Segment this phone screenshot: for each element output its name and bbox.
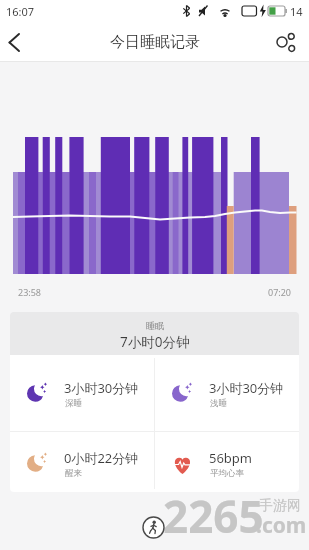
staticText: 3小时30分钟: [209, 379, 284, 397]
button[interactable]: [142, 516, 165, 539]
staticText: 浅睡: [210, 398, 227, 409]
button[interactable]: 3小时30分钟: [10, 355, 154, 431]
button[interactable]: 3小时30分钟: [155, 355, 299, 431]
staticText: 0小时22分钟: [64, 449, 139, 467]
staticText: 深睡: [65, 398, 82, 409]
button[interactable]: [0, 22, 40, 62]
staticText: 07:20: [268, 286, 292, 298]
button[interactable]: 0小时22分钟: [10, 432, 154, 492]
staticText: 睡眠: [146, 320, 164, 331]
staticText: 16:07: [6, 4, 35, 19]
staticText: 23:58: [18, 286, 42, 298]
staticText: 今日睡眠记录: [110, 33, 200, 52]
staticText: 手游网: [259, 497, 301, 515]
staticText: 14: [290, 4, 303, 19]
staticText: 7小时0分钟: [120, 333, 190, 351]
staticText: 3小时30分钟: [64, 379, 139, 397]
button[interactable]: [269, 22, 309, 62]
staticText: .com: [256, 511, 307, 540]
staticText: 2265: [163, 486, 264, 546]
button[interactable]: 56bpm: [155, 432, 299, 492]
staticText: 平均心率: [210, 468, 244, 479]
staticText: 56bpm: [209, 449, 253, 467]
staticText: 醒来: [65, 468, 82, 479]
